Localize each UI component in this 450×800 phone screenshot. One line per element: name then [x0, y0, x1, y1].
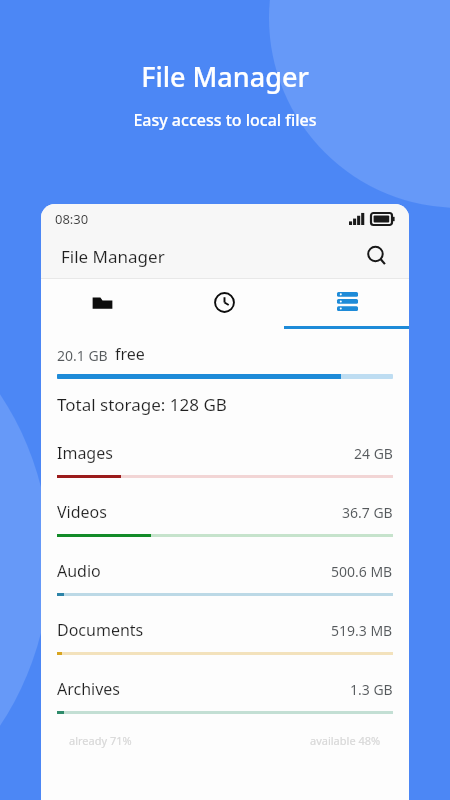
- staticText: Audio: [57, 560, 101, 582]
- staticText: Total storage: 128 GB: [57, 393, 227, 416]
- button[interactable]: Archives: [41, 666, 409, 725]
- staticText: Documents: [57, 619, 144, 641]
- button[interactable]: Search: [359, 238, 395, 274]
- staticText: 24 GB: [354, 444, 393, 463]
- staticText: 519.3 MB: [331, 621, 393, 640]
- button[interactable]: Images: [41, 430, 409, 489]
- staticText: Images: [57, 442, 113, 464]
- staticText: File Manager: [61, 245, 165, 268]
- staticText: 08:30: [55, 210, 89, 228]
- button[interactable]: Documents: [41, 607, 409, 666]
- staticText: available 48%: [310, 733, 381, 748]
- staticText: 20.1 GB: [57, 346, 108, 365]
- button[interactable]: Audio: [41, 548, 409, 607]
- button[interactable]: Files: [41, 279, 163, 325]
- staticText: 1.3 GB: [350, 680, 393, 699]
- staticText: already 71%: [69, 733, 132, 748]
- button[interactable]: Recent: [163, 279, 286, 325]
- staticText: Easy access to local files: [133, 109, 317, 131]
- staticText: 36.7 GB: [342, 503, 393, 522]
- staticText: File Manager: [141, 58, 309, 95]
- button[interactable]: Videos: [41, 489, 409, 548]
- staticText: free: [115, 343, 145, 365]
- staticText: Archives: [57, 678, 121, 700]
- button[interactable]: Storage: [286, 279, 409, 325]
- staticText: Videos: [57, 501, 107, 523]
- staticText: 500.6 MB: [331, 562, 393, 581]
